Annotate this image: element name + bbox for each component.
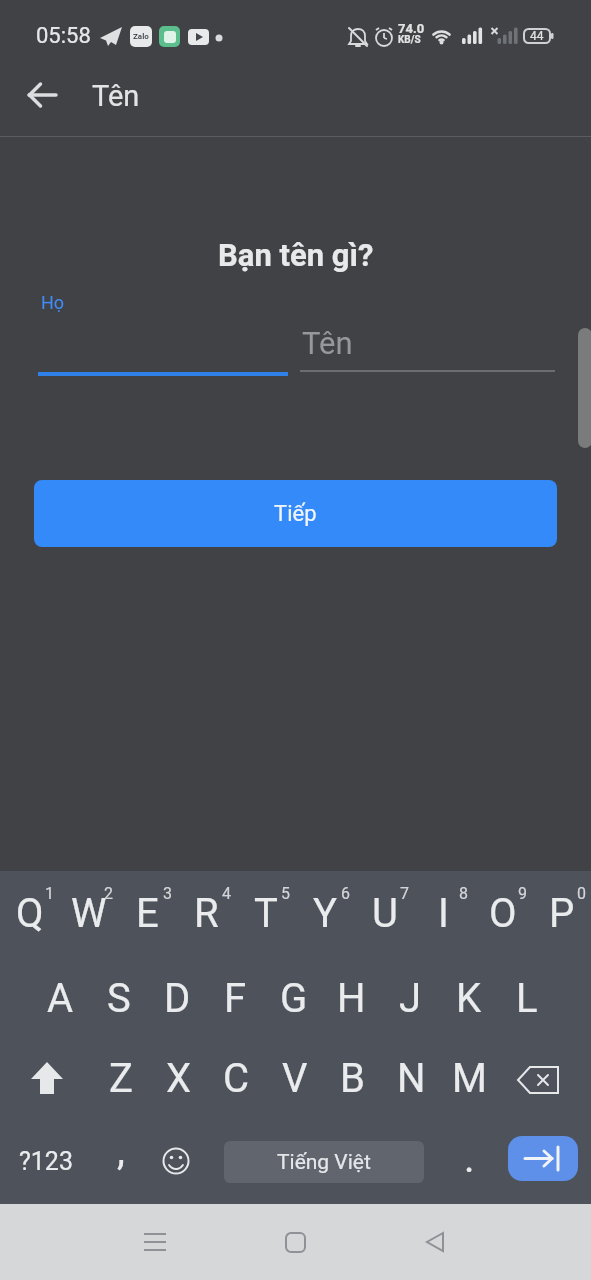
staticText: Tên xyxy=(92,79,140,113)
staticText: H xyxy=(337,975,366,1022)
button[interactable]: Tiếng Việt xyxy=(224,1141,424,1183)
button[interactable]: O xyxy=(473,872,532,955)
button[interactable]: R xyxy=(177,872,236,955)
button[interactable]: H xyxy=(322,957,381,1040)
button[interactable] xyxy=(144,1232,166,1252)
staticText: R xyxy=(194,890,219,937)
staticText: Bạn tên gì? xyxy=(218,237,374,273)
staticText: 5 xyxy=(281,884,290,903)
staticText: 0 xyxy=(577,884,586,903)
button[interactable]: G xyxy=(264,957,323,1040)
button[interactable]: K xyxy=(439,957,498,1040)
staticText: W xyxy=(71,890,107,937)
staticText: U xyxy=(372,890,398,937)
staticText: Tiếp xyxy=(274,501,317,527)
staticText: X xyxy=(166,1055,192,1102)
staticText: Y xyxy=(313,890,338,937)
button[interactable]: I xyxy=(414,872,473,955)
staticText: V xyxy=(282,1055,308,1102)
button[interactable]: Z xyxy=(91,1037,150,1120)
staticText: 2 xyxy=(104,884,113,903)
button[interactable]: C xyxy=(207,1037,266,1120)
staticText: Tiếng Việt xyxy=(277,1150,371,1175)
staticText: Z xyxy=(109,1055,133,1102)
button[interactable] xyxy=(285,1232,306,1253)
button[interactable]: X xyxy=(149,1037,208,1120)
staticText: M xyxy=(452,1055,487,1102)
button[interactable]: Q xyxy=(0,872,59,955)
staticText: 4 xyxy=(222,884,231,903)
button[interactable] xyxy=(30,1062,64,1096)
staticText: G xyxy=(280,975,308,1022)
staticText: Q xyxy=(16,890,44,937)
button[interactable] xyxy=(162,1147,190,1175)
staticText: ?123 xyxy=(19,1147,73,1176)
staticText: F xyxy=(224,975,247,1022)
button[interactable] xyxy=(517,1066,561,1094)
staticText: P xyxy=(549,890,575,937)
button[interactable]: F xyxy=(206,957,265,1040)
staticText: KB/S xyxy=(398,34,421,46)
staticText: 9 xyxy=(518,884,527,903)
button[interactable]: U xyxy=(355,872,414,955)
button[interactable] xyxy=(508,1136,578,1181)
button[interactable]: J xyxy=(381,957,440,1040)
staticText: 44 xyxy=(530,29,544,43)
staticText: C xyxy=(223,1055,250,1102)
staticText: S xyxy=(107,975,131,1022)
button[interactable]: N xyxy=(382,1037,441,1120)
button[interactable]: S xyxy=(89,957,148,1040)
staticText: 3 xyxy=(163,884,172,903)
staticText: Họ xyxy=(41,292,65,313)
staticText: E xyxy=(136,890,159,937)
button[interactable] xyxy=(425,1232,445,1252)
staticText: O xyxy=(489,890,517,937)
button[interactable]: P xyxy=(532,872,591,955)
staticText: L xyxy=(516,975,538,1022)
staticText: 8 xyxy=(459,884,468,903)
staticText: N xyxy=(397,1055,426,1102)
staticText: 74.0 xyxy=(398,21,425,36)
button[interactable]: T xyxy=(236,872,295,955)
button[interactable]: B xyxy=(323,1037,382,1120)
button[interactable]: Tiếp xyxy=(34,480,557,547)
staticText: K xyxy=(456,975,482,1022)
staticText: 6 xyxy=(341,884,350,903)
staticText: A xyxy=(47,975,74,1022)
staticText: D xyxy=(164,975,191,1022)
button[interactable]: A xyxy=(31,957,90,1040)
staticText: J xyxy=(399,975,422,1022)
staticText: B xyxy=(340,1055,365,1102)
staticText: , xyxy=(117,1127,125,1174)
button[interactable]: M xyxy=(440,1037,499,1120)
staticText: I xyxy=(438,890,449,937)
button[interactable]: V xyxy=(265,1037,324,1120)
staticText: 1 xyxy=(45,884,54,903)
staticText: Zalo xyxy=(133,32,149,41)
button[interactable]: E xyxy=(118,872,177,955)
button[interactable]: W xyxy=(59,872,118,955)
staticText: T xyxy=(254,890,278,937)
staticText: Tên xyxy=(302,325,353,361)
staticText: . xyxy=(464,1135,475,1182)
button[interactable] xyxy=(28,82,58,108)
button[interactable]: L xyxy=(497,957,556,1040)
staticText: 7 xyxy=(400,884,409,903)
staticText: 05:58 xyxy=(36,23,91,49)
button[interactable]: Y xyxy=(296,872,355,955)
button[interactable]: D xyxy=(148,957,207,1040)
